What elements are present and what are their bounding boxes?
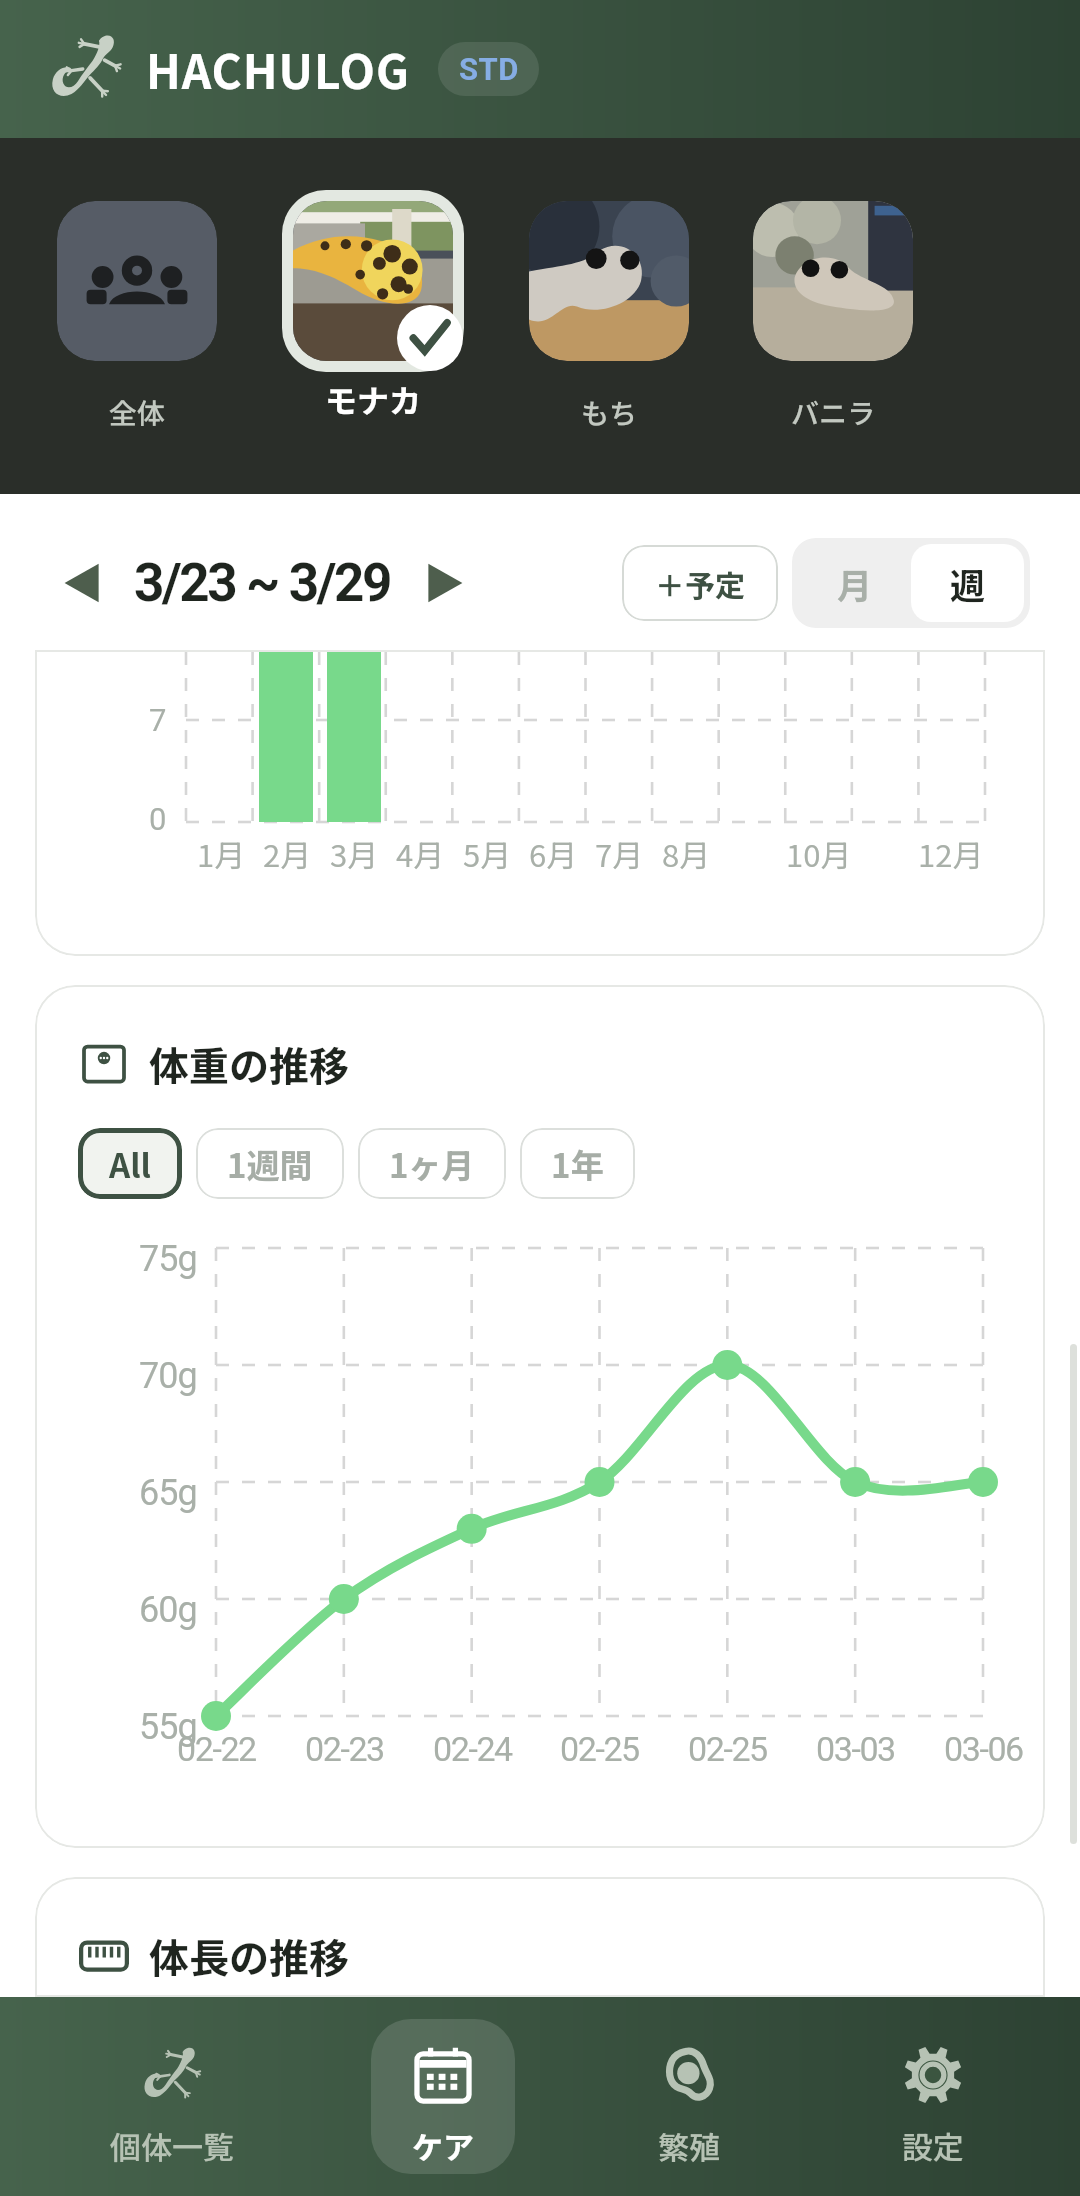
staticText: 月 [837, 558, 873, 609]
staticText: 繁殖 [658, 2123, 720, 2168]
staticText: 70g [139, 1355, 197, 1397]
staticText: 週 [950, 558, 986, 609]
staticText: 1ヶ月 [389, 1140, 475, 1188]
button[interactable] [529, 201, 689, 361]
staticText: 02-25 [560, 1729, 639, 1769]
staticText: HACHULOG [146, 36, 410, 103]
staticText: STD [459, 51, 519, 87]
staticText: 8月 [662, 831, 711, 876]
staticText: 03-03 [816, 1729, 895, 1769]
button[interactable]: Previous week [44, 544, 122, 622]
staticText: 1月 [197, 831, 246, 876]
staticText: 03-06 [944, 1729, 1023, 1769]
staticText: 体重の推移 [149, 1035, 349, 1093]
button[interactable]: 1ヶ月 [358, 1128, 506, 1199]
button[interactable]: 月 [798, 544, 911, 622]
button[interactable]: ＋予定 [622, 545, 778, 621]
staticText: 7 [149, 702, 167, 738]
staticText: 55g [139, 1706, 197, 1748]
staticText: 0 [149, 801, 167, 837]
staticText: バニラ [791, 392, 876, 433]
staticText: 10月 [786, 831, 852, 876]
button[interactable]: 繁殖 [617, 2019, 761, 2174]
button[interactable]: Next week [405, 544, 483, 622]
button[interactable] [282, 190, 464, 372]
staticText: 全体 [109, 392, 166, 433]
button[interactable]: 1週間 [196, 1128, 344, 1199]
staticText: 5月 [463, 831, 512, 876]
staticText: 02-23 [305, 1729, 384, 1769]
staticText: 65g [139, 1472, 197, 1514]
button[interactable] [753, 201, 913, 361]
staticText: もち [581, 392, 638, 433]
staticText: 3/23 ~ 3/29 [134, 552, 391, 614]
staticText: 02-24 [433, 1729, 512, 1769]
button[interactable]: 設定 [861, 2019, 1005, 2174]
staticText: ケア [412, 2123, 474, 2168]
staticText: 75g [139, 1238, 197, 1280]
staticText: 02-25 [688, 1729, 767, 1769]
button[interactable]: 個体一覧 [100, 2019, 244, 2174]
staticText: 02-22 [177, 1729, 256, 1769]
button[interactable] [57, 201, 217, 361]
staticText: 3月 [330, 831, 379, 876]
staticText: 12月 [918, 831, 984, 876]
staticText: モナカ [325, 376, 422, 422]
button[interactable]: All [78, 1128, 182, 1199]
staticText: 6月 [529, 831, 578, 876]
staticText: 2月 [263, 831, 312, 876]
staticText: 60g [139, 1589, 197, 1631]
staticText: All [109, 1140, 151, 1188]
button[interactable]: 週 [911, 544, 1024, 622]
staticText: 1年 [551, 1140, 604, 1188]
staticText: 設定 [902, 2123, 964, 2168]
staticText: 個体一覧 [110, 2123, 234, 2168]
staticText: 7月 [595, 831, 644, 876]
staticText: 1週間 [227, 1140, 313, 1188]
button[interactable]: 1年 [520, 1128, 635, 1199]
staticText: ＋予定 [655, 562, 745, 605]
button[interactable]: ケア [371, 2019, 515, 2174]
staticText: 体長の推移 [149, 1927, 349, 1985]
button[interactable]: STD [438, 42, 539, 96]
staticText: 4月 [396, 831, 445, 876]
